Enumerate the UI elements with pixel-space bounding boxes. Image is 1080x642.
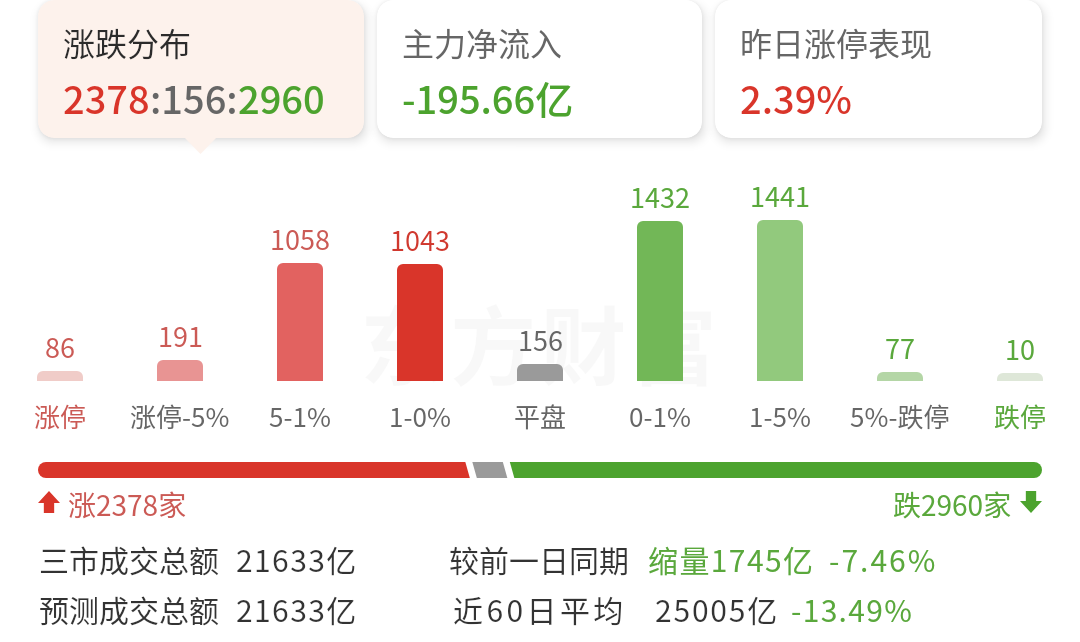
staticText: 涨停 bbox=[34, 397, 87, 435]
staticText: 191 bbox=[158, 316, 203, 355]
staticText: 5%-跌停 bbox=[850, 397, 950, 435]
staticText: :156: bbox=[150, 70, 238, 125]
button[interactable]: 涨跌分布 bbox=[38, 0, 364, 138]
staticText: 21633亿 bbox=[236, 587, 358, 630]
staticText: 1-5% bbox=[749, 397, 811, 435]
staticText: 77 bbox=[885, 328, 915, 367]
staticText: 近60日平均 bbox=[453, 587, 627, 630]
staticText: 平盘 bbox=[514, 397, 567, 435]
button[interactable]: 昨日涨停表现 bbox=[715, 0, 1042, 138]
staticText: 21633亿 bbox=[236, 537, 358, 580]
button[interactable]: 86 bbox=[0, 170, 120, 436]
staticText: 10 bbox=[1005, 329, 1035, 368]
staticText: 涨2378家 bbox=[68, 484, 187, 525]
staticText: 较前一日同期 bbox=[449, 537, 629, 580]
staticText: -13.49% bbox=[791, 587, 914, 630]
staticText: 5-1% bbox=[269, 397, 331, 435]
staticText: 跌停 bbox=[994, 397, 1047, 435]
button[interactable]: 1441 bbox=[720, 170, 840, 436]
staticText: 三市成交总额 bbox=[39, 537, 219, 580]
staticText: 2378 bbox=[63, 70, 150, 125]
other: Declining stocks bbox=[1020, 491, 1042, 513]
button[interactable]: 主力净流入 bbox=[377, 0, 702, 138]
staticText: -195.66亿 bbox=[402, 70, 574, 125]
button[interactable]: 1058 bbox=[240, 170, 360, 436]
staticText: 涨停-5% bbox=[130, 397, 230, 435]
staticText: 0-1% bbox=[629, 397, 691, 435]
staticText: 25005亿 bbox=[655, 587, 780, 630]
button[interactable]: 77 bbox=[840, 170, 960, 436]
staticText: 1-0% bbox=[389, 397, 451, 435]
button[interactable]: 156 bbox=[480, 170, 600, 436]
staticText: 2960 bbox=[238, 70, 325, 125]
staticText: 1432 bbox=[630, 177, 690, 216]
staticText: 跌2960家 bbox=[893, 484, 1012, 525]
staticText: 1043 bbox=[390, 220, 450, 259]
staticText: 东方财富 bbox=[360, 279, 722, 404]
staticText: 156 bbox=[518, 320, 563, 359]
staticText: 缩量1745亿 bbox=[648, 537, 815, 580]
staticText: -7.46% bbox=[829, 537, 938, 580]
button[interactable]: 1043 bbox=[360, 170, 480, 436]
staticText: 昨日涨停表现 bbox=[740, 19, 933, 65]
staticText: 2.39% bbox=[740, 70, 852, 125]
staticText: 1441 bbox=[750, 176, 810, 215]
staticText: 预测成交总额 bbox=[39, 587, 219, 630]
button[interactable]: 191 bbox=[120, 170, 240, 436]
staticText: 涨跌分布 bbox=[63, 19, 192, 65]
button[interactable]: 10 bbox=[960, 170, 1080, 436]
button[interactable]: 1432 bbox=[600, 170, 720, 436]
staticText: 1058 bbox=[270, 219, 330, 258]
staticText: 86 bbox=[45, 327, 75, 366]
other: Advancing stocks bbox=[38, 491, 60, 513]
staticText: 主力净流入 bbox=[402, 19, 563, 65]
